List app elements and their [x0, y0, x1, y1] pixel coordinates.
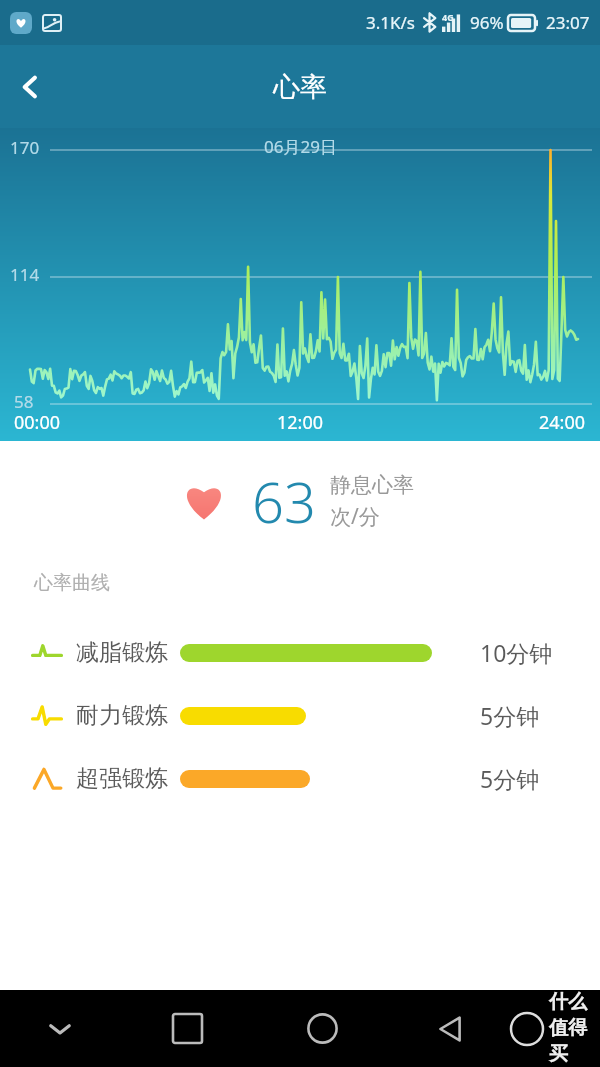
staticText: 5分钟	[480, 700, 600, 731]
button[interactable]: 超强锻炼	[0, 747, 600, 810]
staticText: 耐力锻炼	[76, 701, 168, 730]
staticText: 23:07	[546, 11, 590, 34]
staticText: 3.1K/s	[366, 11, 415, 34]
staticText: 63	[252, 463, 316, 539]
staticText: 超强锻炼	[76, 764, 168, 793]
button[interactable]: 减脂锻炼	[0, 621, 600, 684]
staticText: 06月29日	[264, 135, 337, 158]
staticText: 58	[14, 390, 34, 413]
staticText: 00:00	[14, 410, 61, 435]
staticText: 12:00	[277, 410, 324, 435]
staticText: 10分钟	[480, 637, 600, 668]
staticText: 心率曲线	[34, 571, 110, 595]
staticText: 114	[10, 263, 40, 286]
button[interactable]: 耐力锻炼	[0, 684, 600, 747]
staticText: 4G	[442, 11, 454, 23]
staticText: 心率	[273, 70, 327, 104]
staticText: 什么值得买	[549, 990, 600, 1066]
staticText: 减脂锻炼	[76, 638, 168, 667]
staticText: 24:00	[539, 410, 586, 435]
staticText: 170	[10, 136, 40, 159]
staticText: 5分钟	[480, 763, 600, 794]
button[interactable]: Back	[0, 57, 60, 117]
button[interactable]: Recents	[120, 990, 255, 1067]
button[interactable]: Hide	[0, 990, 120, 1067]
staticText: 96%	[470, 11, 504, 34]
button[interactable]: Back	[390, 990, 510, 1067]
staticText: 次/分	[330, 502, 380, 531]
button[interactable]: Home	[255, 990, 390, 1067]
staticText: 静息心率	[330, 472, 414, 498]
